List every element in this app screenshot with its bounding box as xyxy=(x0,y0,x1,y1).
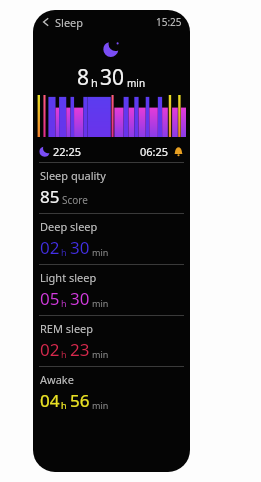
staticText: 30 xyxy=(70,287,90,310)
staticText: Deep sleep xyxy=(40,219,98,234)
staticText: Sleep xyxy=(55,15,84,30)
staticText: Sleep quality xyxy=(40,168,106,183)
staticText: min xyxy=(92,348,109,360)
staticText: 06:25 xyxy=(140,144,169,159)
staticText: min xyxy=(127,76,146,90)
button[interactable]: Sleep quality xyxy=(33,162,190,213)
button[interactable]: Awake xyxy=(33,366,190,417)
staticText: 05 xyxy=(40,287,60,310)
staticText: h xyxy=(91,75,98,90)
staticText: 30 xyxy=(100,63,125,92)
button[interactable]: Back xyxy=(37,13,55,31)
staticText: min xyxy=(92,246,109,258)
staticText: 23 xyxy=(70,338,90,361)
staticText: min xyxy=(92,399,109,411)
staticText: Light sleep xyxy=(40,270,97,285)
staticText: Score xyxy=(62,193,88,207)
staticText: 8 xyxy=(77,63,90,92)
staticText: 15:25 xyxy=(156,15,182,29)
staticText: h xyxy=(61,399,67,411)
staticText: min xyxy=(92,297,109,309)
staticText: 30 xyxy=(70,236,90,259)
button[interactable]: Light sleep xyxy=(33,264,190,315)
staticText: h xyxy=(61,297,67,309)
staticText: Awake xyxy=(40,372,74,387)
staticText: h xyxy=(61,246,67,258)
button[interactable]: Deep sleep xyxy=(33,213,190,264)
staticText: 02 xyxy=(40,236,60,259)
staticText: h xyxy=(61,348,67,360)
button[interactable]: REM sleep xyxy=(33,315,190,366)
staticText: 85 xyxy=(40,185,60,208)
staticText: 22:25 xyxy=(53,144,82,159)
staticText: 02 xyxy=(40,338,60,361)
staticText: REM sleep xyxy=(40,321,94,336)
staticText: 56 xyxy=(70,389,90,412)
staticText: 04 xyxy=(40,389,60,412)
